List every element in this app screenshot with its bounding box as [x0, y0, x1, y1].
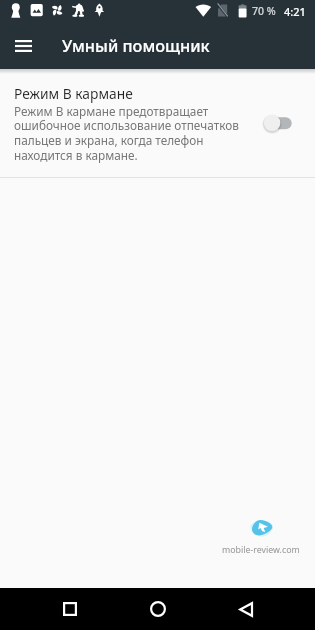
button[interactable]: Режим В кармане — [0, 74, 315, 177]
staticText: mobile-review.com — [222, 544, 300, 556]
button[interactable]: Open navigation drawer — [0, 22, 47, 69]
button[interactable]: Home — [140, 588, 176, 630]
button[interactable]: Toggle In-pocket mode — [266, 110, 300, 134]
button[interactable]: Back — [228, 588, 264, 630]
staticText: Режим В кармане — [14, 84, 133, 103]
staticText: 70 % — [252, 4, 276, 18]
staticText: Умный помощник — [62, 35, 210, 57]
staticText: 4:21 — [284, 4, 306, 19]
button[interactable]: Recent apps — [52, 588, 88, 630]
staticText: Режим В кармане предотвращает ошибочное … — [14, 103, 242, 164]
